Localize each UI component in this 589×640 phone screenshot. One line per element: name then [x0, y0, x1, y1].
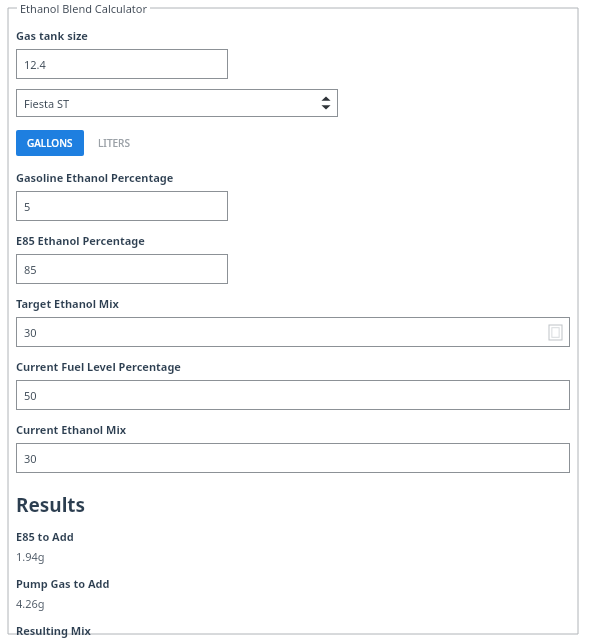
staticText: 50	[24, 388, 562, 403]
button[interactable]: 85	[16, 254, 228, 284]
button[interactable]: LITERS	[84, 130, 144, 156]
staticText: E85 to Add	[16, 529, 74, 544]
staticText: 12.4	[24, 57, 220, 72]
staticText: 4.26g	[16, 596, 45, 611]
staticText: Pump Gas to Add	[16, 576, 110, 591]
button[interactable]: GALLONS	[16, 130, 84, 156]
staticText: Resulting Mix	[16, 623, 91, 638]
staticText: 30	[24, 451, 562, 466]
button[interactable]: Fiesta ST	[16, 89, 338, 117]
other: Open list	[320, 94, 332, 112]
staticText: E85 Ethanol Percentage	[16, 233, 145, 248]
staticText: 1.94g	[16, 549, 45, 564]
button[interactable]: 5	[16, 191, 228, 221]
button[interactable]: 12.4	[16, 49, 228, 79]
staticText: Fiesta ST	[24, 96, 320, 111]
staticText: LITERS	[98, 136, 130, 150]
staticText: Current Ethanol Mix	[16, 422, 127, 437]
staticText: GALLONS	[27, 136, 73, 150]
button[interactable]: 50	[16, 380, 570, 410]
staticText: Results	[16, 492, 86, 518]
staticText: 5	[24, 199, 220, 214]
staticText: Current Fuel Level Percentage	[16, 359, 181, 374]
staticText: Ethanol Blend Calculator	[20, 1, 148, 16]
button[interactable]: 30	[16, 443, 570, 473]
staticText: Target Ethanol Mix	[16, 296, 119, 311]
button[interactable]: 30	[16, 317, 570, 347]
staticText: 85	[24, 262, 220, 277]
staticText: Gasoline Ethanol Percentage	[16, 170, 174, 185]
staticText: Gas tank size	[16, 28, 88, 43]
button[interactable]: Stepper	[549, 325, 562, 340]
staticText: 30	[24, 325, 549, 340]
